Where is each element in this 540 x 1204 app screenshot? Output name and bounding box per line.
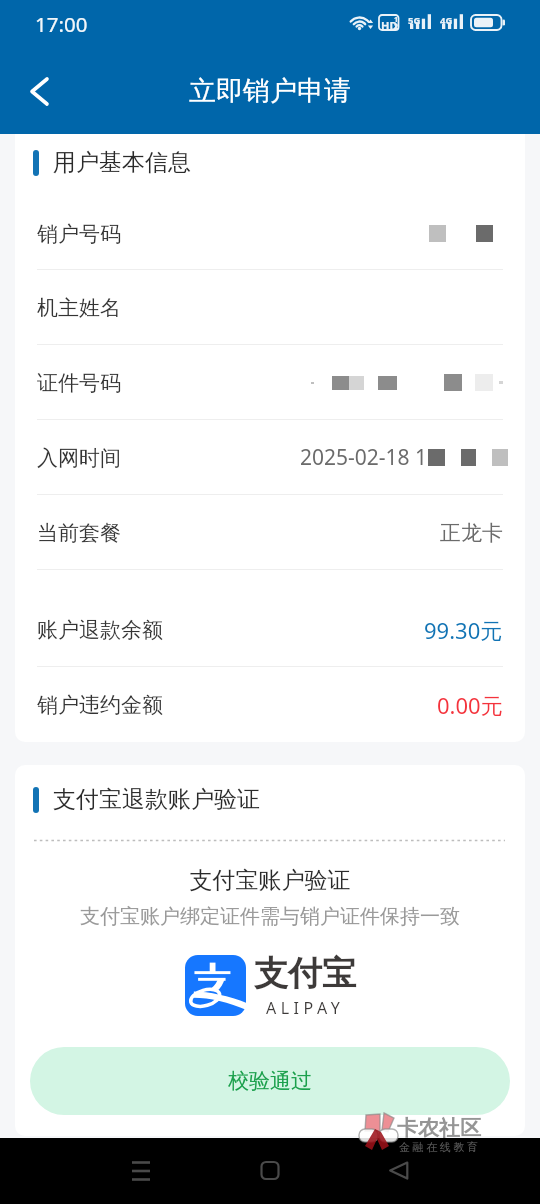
button[interactable]: 账户退款余额 [15, 592, 525, 667]
staticText: 机主姓名 [37, 295, 121, 321]
staticText: 17:00 [35, 10, 88, 38]
staticText: 支付宝账户验证 [15, 866, 525, 895]
staticText: 校验通过 [228, 1068, 312, 1094]
button[interactable]: 销户号码 [15, 197, 525, 270]
staticText: 用户基本信息 [53, 148, 191, 177]
staticText: 正龙卡 [440, 520, 503, 546]
staticText: 账户退款余额 [37, 617, 163, 643]
staticText: 销户号码 [37, 221, 121, 247]
staticText: 支付宝 [254, 952, 356, 995]
staticText: 99.30元 [424, 615, 503, 645]
staticText: 支付宝账户绑定证件需与销户证件保持一致 [15, 904, 525, 929]
button[interactable]: 销户违约金额 [15, 667, 525, 742]
staticText: 4G [440, 14, 453, 27]
staticText: ALIPAY [266, 997, 345, 1019]
button[interactable]: 校验通过 [30, 1047, 510, 1115]
button[interactable]: Recent apps [117, 1146, 165, 1194]
staticText: 卡农社区 [397, 1115, 481, 1141]
staticText: 证件号码 [37, 370, 121, 396]
button[interactable]: 证件号码 [15, 345, 525, 420]
button[interactable]: Back [375, 1146, 423, 1194]
staticText: 2 [394, 22, 399, 32]
staticText: 销户违约金额 [37, 692, 163, 718]
staticText: HD [381, 18, 398, 33]
staticText: 金融在线教育 [399, 1140, 481, 1154]
button[interactable]: 入网时间 [15, 420, 525, 495]
staticText: 5G [408, 14, 421, 27]
staticText: 立即销户申请 [189, 74, 351, 108]
staticText: 2025-02-18 1 [300, 443, 428, 472]
button[interactable]: Back [0, 48, 80, 134]
staticText: 当前套餐 [37, 520, 121, 546]
button[interactable]: Home [246, 1146, 294, 1194]
staticText: 1 [394, 15, 399, 25]
staticText: 入网时间 [37, 445, 121, 471]
staticText: 支付宝退款账户验证 [53, 785, 260, 814]
button[interactable]: 当前套餐 [15, 495, 525, 570]
button[interactable]: 机主姓名 [15, 270, 525, 345]
staticText: 0.00元 [437, 690, 503, 720]
